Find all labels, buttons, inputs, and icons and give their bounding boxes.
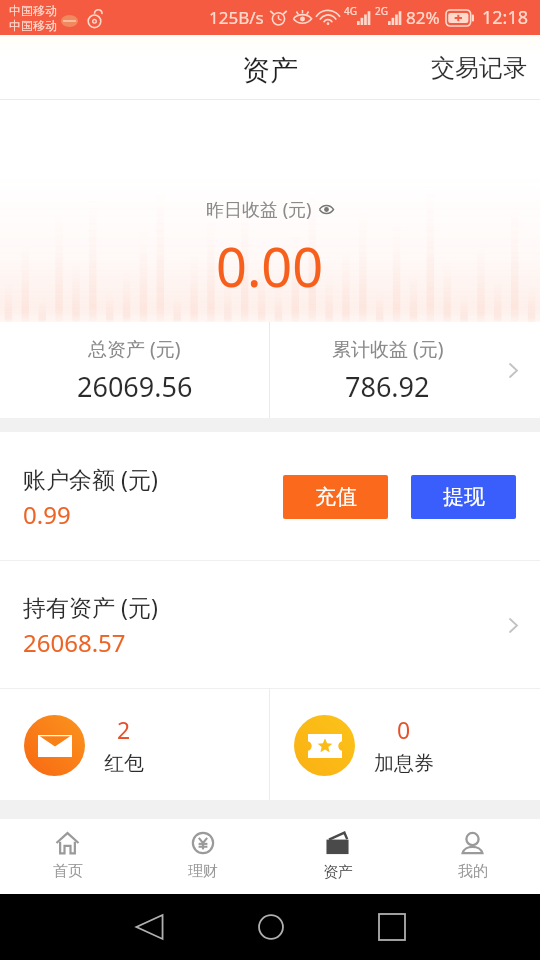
staticText: 提现 bbox=[443, 484, 485, 510]
button[interactable]: 总资产 (元) bbox=[0, 322, 540, 418]
staticText: 总资产 (元) bbox=[88, 336, 181, 362]
button[interactable]: 0 bbox=[270, 689, 540, 800]
staticText: 4G bbox=[344, 4, 357, 18]
other: Recent apps bbox=[379, 914, 405, 940]
button[interactable]: Back bbox=[89, 894, 210, 960]
staticText: 加息券 bbox=[374, 751, 434, 776]
staticText: 中国移动 bbox=[9, 18, 57, 33]
staticText: 充值 bbox=[315, 484, 357, 510]
staticText: 累计收益 (元) bbox=[332, 336, 444, 362]
button[interactable]: 持有资产 (元) bbox=[0, 561, 540, 689]
button[interactable]: 资产 bbox=[270, 819, 405, 894]
staticText: 理财 bbox=[188, 862, 218, 881]
staticText: 中国移动 bbox=[9, 3, 57, 18]
staticText: 我的 bbox=[458, 862, 488, 881]
staticText: 0.00 bbox=[216, 229, 324, 303]
staticText: 26068.57 bbox=[23, 626, 126, 659]
staticText: 账户余额 (元) bbox=[23, 463, 158, 494]
button[interactable]: 理财 bbox=[135, 819, 270, 894]
other: Back bbox=[135, 914, 164, 940]
staticText: 0 bbox=[397, 714, 411, 745]
button[interactable]: 充值 bbox=[283, 475, 388, 519]
staticText: 12:18 bbox=[482, 5, 529, 30]
button[interactable]: 首页 bbox=[0, 819, 135, 894]
other: Home bbox=[258, 914, 284, 940]
button[interactable]: 提现 bbox=[411, 475, 516, 519]
staticText: 资产 bbox=[323, 863, 353, 882]
button[interactable]: Recent apps bbox=[331, 894, 452, 960]
staticText: 资产 bbox=[242, 53, 298, 88]
button[interactable]: 我的 bbox=[405, 819, 540, 894]
other: Toggle amount visibility bbox=[319, 204, 334, 215]
staticText: 交易记录 bbox=[431, 53, 527, 83]
staticText: 125B/s bbox=[209, 6, 264, 29]
button[interactable]: 交易记录 bbox=[418, 39, 540, 97]
staticText: 红包 bbox=[104, 751, 144, 776]
staticText: 2 bbox=[117, 714, 131, 745]
staticText: 昨日收益 (元) bbox=[206, 197, 312, 222]
staticText: 82% bbox=[406, 6, 440, 29]
button[interactable]: 2 bbox=[0, 689, 269, 800]
staticText: 0.99 bbox=[23, 498, 71, 531]
staticText: 持有资产 (元) bbox=[23, 591, 158, 622]
button[interactable]: Home bbox=[210, 894, 331, 960]
staticText: 首页 bbox=[53, 862, 83, 881]
staticText: 2G bbox=[375, 4, 388, 18]
staticText: 26069.56 bbox=[77, 368, 193, 405]
staticText: 786.92 bbox=[345, 368, 430, 405]
